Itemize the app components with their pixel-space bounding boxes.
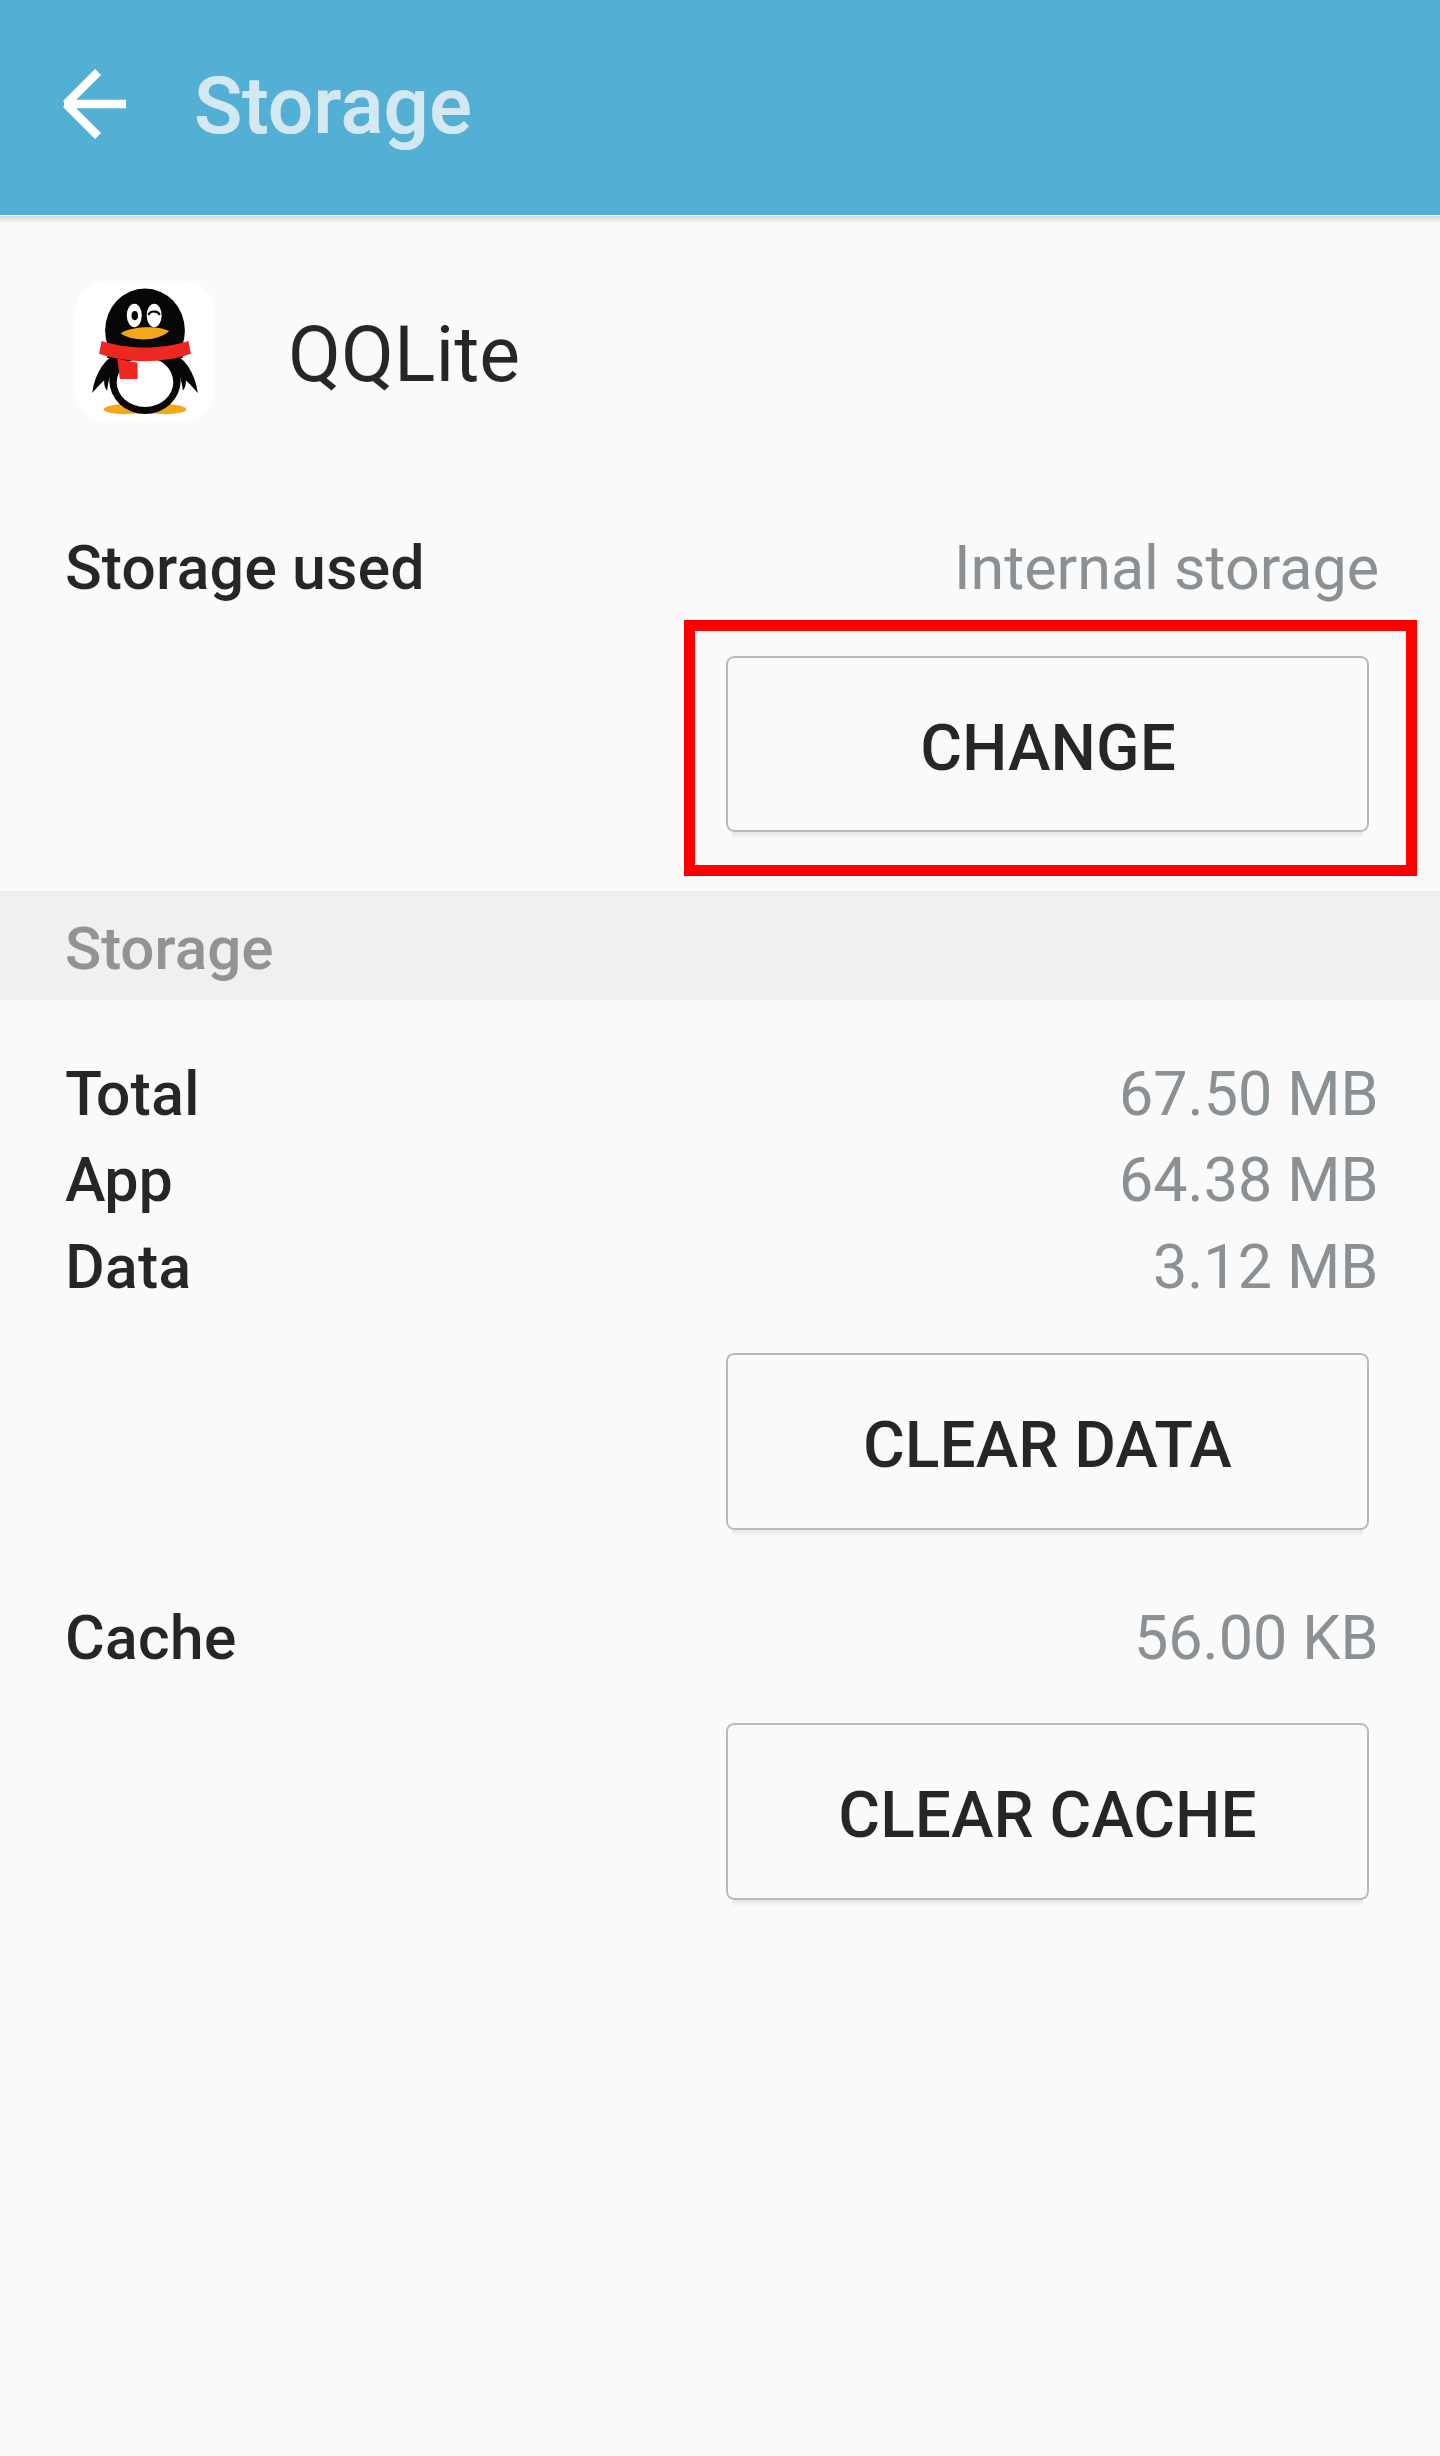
staticText: 67.50 MB [1119,1058,1379,1129]
staticText: 3.12 MB [1153,1231,1379,1302]
staticText: App [65,1144,173,1215]
button[interactable]: CLEAR DATA [726,1353,1369,1530]
staticText: 64.38 MB [1119,1144,1379,1215]
staticText: Storage [194,59,472,153]
staticText: Cache [65,1602,237,1673]
staticText: Data [65,1231,192,1302]
staticText: Internal storage [954,532,1379,603]
staticText: CHANGE [920,711,1176,786]
button[interactable]: Back [44,50,152,158]
staticText: QQLite [288,310,521,400]
staticText: 56.00 KB [1134,1602,1379,1673]
staticText: CLEAR DATA [863,1408,1232,1483]
button[interactable]: CHANGE [726,656,1369,832]
button[interactable]: CLEAR CACHE [726,1723,1369,1900]
staticText: Storage used [65,532,425,603]
staticText: Total [65,1058,200,1129]
staticText: Storage [65,913,274,983]
staticText: CLEAR CACHE [838,1778,1257,1853]
